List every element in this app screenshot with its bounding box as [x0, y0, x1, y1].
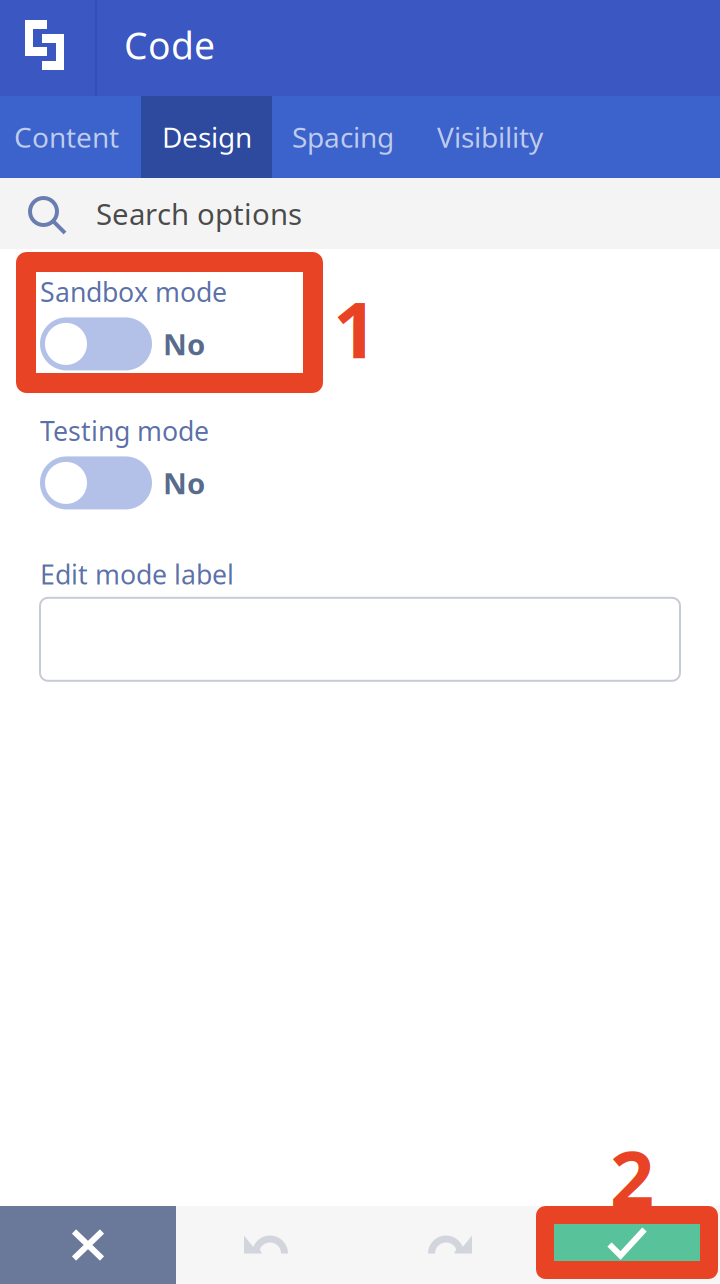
- staticText: Search options: [96, 194, 302, 233]
- button[interactable]: Search options: [0, 178, 720, 249]
- button[interactable]: Content: [0, 96, 141, 178]
- button[interactable]: Confirm: [545, 1215, 720, 1270]
- button[interactable]: Design: [141, 96, 272, 178]
- button[interactable]: Visibility: [416, 96, 564, 178]
- staticText: Content: [14, 118, 119, 156]
- staticText: Sandbox mode: [40, 274, 227, 309]
- staticText: Edit mode label: [40, 556, 234, 592]
- staticText: Visibility: [437, 118, 543, 156]
- staticText: Testing mode: [40, 413, 209, 448]
- staticText: Design: [162, 118, 252, 156]
- staticText: No: [163, 324, 205, 363]
- button[interactable]: Spacing: [272, 96, 416, 178]
- button[interactable]: No: [40, 317, 205, 370]
- button[interactable]: No: [40, 456, 205, 509]
- button[interactable]: Home: [0, 0, 95, 96]
- staticText: Spacing: [292, 118, 394, 156]
- staticText: 2: [610, 1126, 654, 1229]
- button[interactable]: Redo: [358, 1206, 540, 1284]
- button[interactable]: [40, 598, 680, 681]
- staticText: 1: [333, 277, 377, 380]
- staticText: Code: [124, 20, 215, 70]
- button[interactable]: Cancel: [0, 1206, 176, 1284]
- staticText: No: [163, 463, 205, 502]
- button[interactable]: Undo: [176, 1206, 358, 1284]
